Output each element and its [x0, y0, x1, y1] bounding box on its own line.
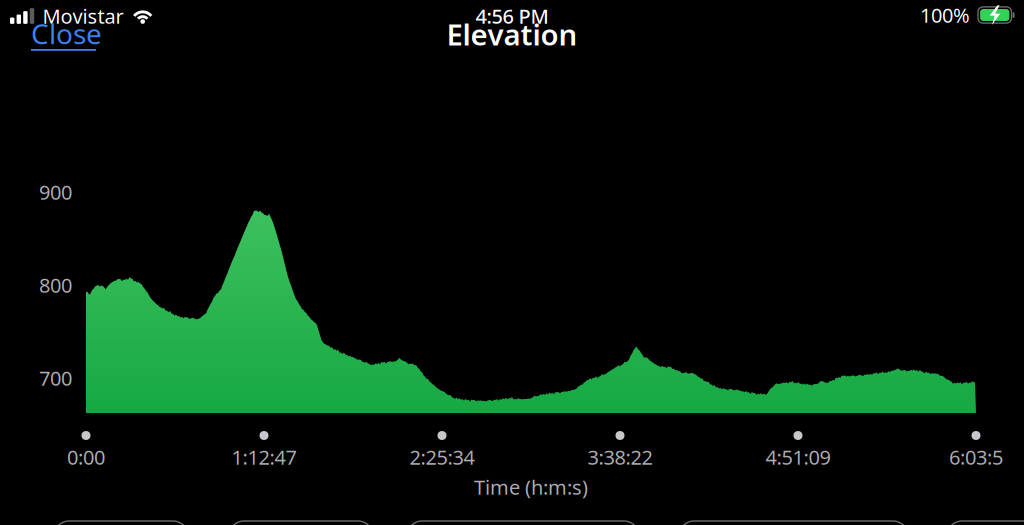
staticText: 4:51:09	[765, 444, 830, 470]
button[interactable]: Heart Rate	[229, 521, 373, 525]
staticText: Close	[31, 15, 102, 52]
button[interactable]: Pace	[54, 521, 188, 525]
staticText: Movistar	[42, 3, 123, 29]
staticText: 1:12:47	[231, 444, 296, 470]
staticText: Elevation	[446, 14, 577, 53]
staticText: 800	[39, 272, 72, 298]
staticText: 4:56 PM	[475, 3, 548, 29]
staticText: 900	[39, 179, 72, 205]
button[interactable]: Elevation	[407, 521, 639, 525]
staticText: 3:38:22	[587, 444, 652, 470]
staticText: 700	[39, 365, 72, 391]
staticText: 100%	[920, 2, 970, 28]
staticText: 0:00	[67, 444, 105, 470]
staticText: 6:03:5	[949, 444, 1003, 470]
button[interactable]: Cadence	[679, 521, 908, 525]
button[interactable]: Close	[31, 19, 141, 57]
staticText: Time (h:m:s)	[474, 474, 588, 500]
staticText: 2:25:34	[409, 444, 474, 470]
button[interactable]: Power	[947, 521, 1024, 525]
